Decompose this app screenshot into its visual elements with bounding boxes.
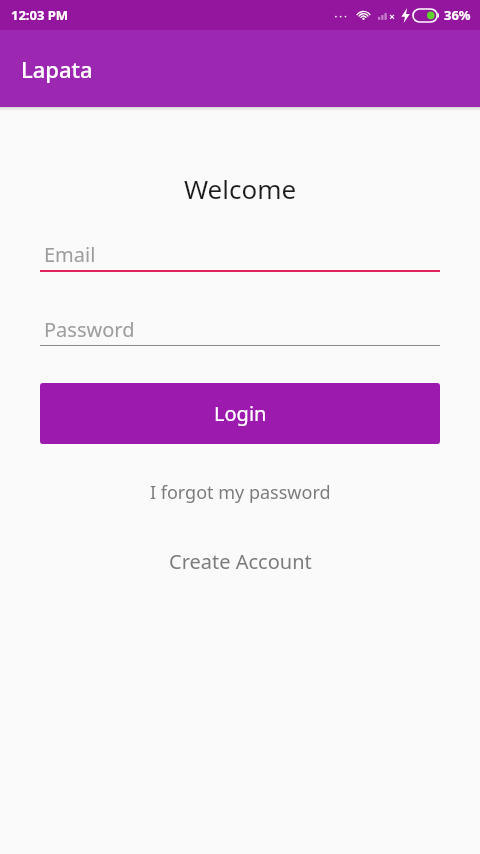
staticText: Password: [44, 316, 135, 343]
staticText: 36%: [444, 6, 471, 24]
staticText: I forgot my password: [150, 480, 331, 505]
staticText: Login: [214, 400, 267, 427]
button[interactable]: Create Account: [0, 539, 480, 583]
button[interactable]: Email: [40, 238, 440, 272]
button[interactable]: Password: [40, 313, 440, 346]
button[interactable]: I forgot my password: [0, 470, 480, 514]
staticText: Lapata: [21, 54, 93, 84]
staticText: 12:03 PM: [11, 6, 69, 24]
staticText: Welcome: [0, 171, 480, 206]
staticText: Create Account: [169, 548, 312, 575]
button[interactable]: Login: [40, 383, 440, 444]
staticText: Email: [44, 241, 96, 268]
